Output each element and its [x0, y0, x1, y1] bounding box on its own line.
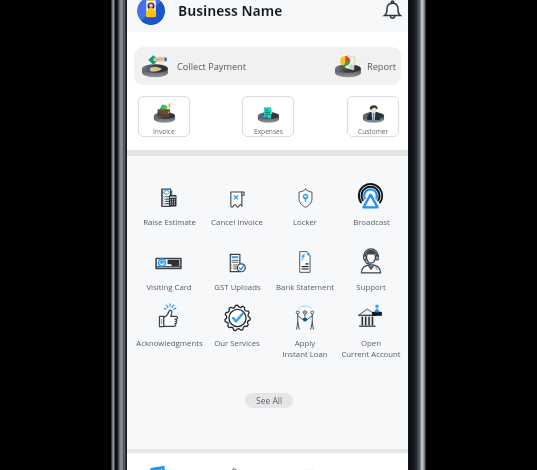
- staticText: Apply Instant Loan: [282, 338, 328, 359]
- button[interactable]: [132, 183, 206, 239]
- button[interactable]: [334, 180, 408, 239]
- button[interactable]: [200, 248, 274, 304]
- button[interactable]: Report: [334, 47, 397, 85]
- button[interactable]: See All: [245, 393, 293, 408]
- staticText: Invoice: [153, 127, 175, 136]
- staticText: Bank Statement: [276, 282, 334, 293]
- staticText: Business Name: [178, 1, 283, 20]
- staticText: Cancel Invoice: [211, 217, 263, 228]
- staticText: Customer: [358, 127, 389, 136]
- button[interactable]: Business profile: [137, 0, 165, 25]
- staticText: Our Services: [214, 338, 260, 349]
- button[interactable]: [334, 244, 408, 304]
- staticText: Raise Estimate: [143, 217, 196, 228]
- staticText: GST Uploads: [214, 282, 261, 293]
- button[interactable]: [200, 301, 274, 359]
- button[interactable]: Invoice: [138, 96, 190, 137]
- button[interactable]: [334, 301, 408, 359]
- button[interactable]: [268, 247, 342, 303]
- button[interactable]: Notifications: [382, 0, 403, 21]
- button[interactable]: Home: [139, 453, 175, 470]
- button[interactable]: [268, 184, 342, 239]
- button[interactable]: [268, 303, 342, 360]
- staticText: Collect Payment: [177, 60, 247, 73]
- staticText: See All: [256, 395, 283, 407]
- staticText: Acknowledgments: [136, 338, 203, 349]
- staticText: Broadcast: [353, 217, 390, 228]
- staticText: Visiting Card: [146, 282, 192, 293]
- staticText: Support: [356, 282, 386, 293]
- button[interactable]: Expenses: [242, 96, 294, 137]
- staticText: Locker: [293, 217, 317, 228]
- staticText: Open Current Account: [341, 338, 401, 359]
- button[interactable]: [200, 184, 274, 239]
- staticText: Expenses: [254, 127, 283, 136]
- button[interactable]: [132, 302, 206, 359]
- button[interactable]: Collect Payment: [141, 47, 247, 85]
- staticText: Report: [367, 60, 397, 73]
- button[interactable]: Customer: [347, 96, 399, 137]
- button[interactable]: Network: [216, 453, 252, 470]
- button[interactable]: [132, 250, 206, 303]
